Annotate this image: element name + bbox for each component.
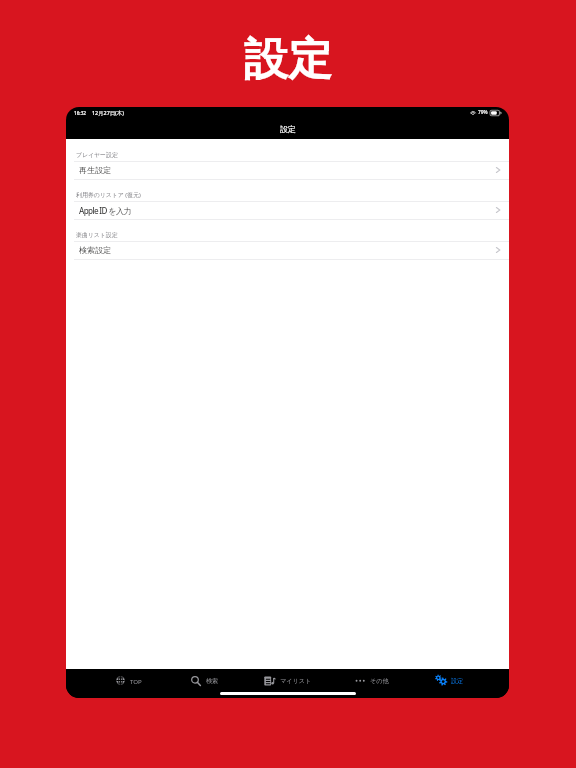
staticText: 12月27日(木) [92,109,124,116]
other: マイリスト [264,676,275,686]
staticText: 利用券のリストア (復元) [76,191,141,199]
staticText: 再生設定 [79,165,112,175]
button[interactable]: 検索設定 [66,241,509,259]
other: TOP [116,676,125,685]
button[interactable]: その他 [353,670,391,691]
button[interactable]: Apple ID を入力 [66,201,509,219]
other: その他 [355,676,366,685]
staticText: 設定 [244,32,332,87]
other: 設定 [435,675,448,686]
staticText: TOP [130,677,142,685]
staticText: 設定 [280,124,296,134]
button[interactable]: マイリスト [262,670,314,691]
staticText: 16:32 [74,110,87,116]
staticText: マイリスト [280,677,312,685]
staticText: プレイヤー設定 [76,151,118,158]
button[interactable]: TOP [114,670,144,691]
staticText: 楽曲リスト設定 [76,231,118,238]
staticText: 79% [478,109,488,116]
button[interactable]: 検索 [189,670,221,691]
staticText: 設定 [451,677,464,685]
staticText: 検索 [206,677,219,685]
staticText: その他 [370,677,389,685]
button[interactable]: 再生設定 [66,161,509,179]
staticText: 検索設定 [79,245,112,255]
staticText: Apple ID を入力 [79,205,131,216]
button[interactable]: 設定 [433,670,466,691]
other: 検索 [191,676,201,686]
